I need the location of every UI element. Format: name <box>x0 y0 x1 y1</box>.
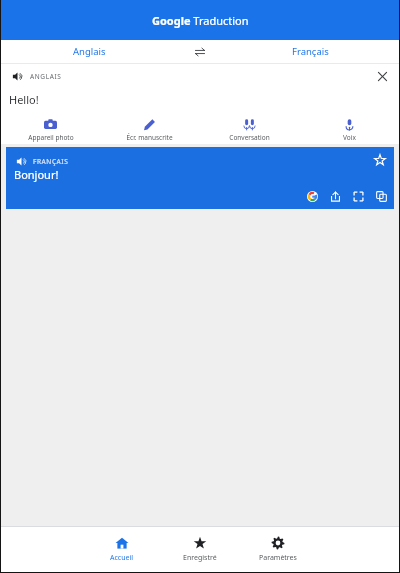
button[interactable]: Anglais <box>1 40 178 63</box>
staticText: FRANÇAIS <box>33 157 69 166</box>
button[interactable]: Appareil photo <box>1 115 100 144</box>
staticText: Voix <box>343 133 356 142</box>
staticText: Accueil <box>110 553 134 563</box>
button[interactable]: Voix <box>299 115 399 144</box>
staticText: Écr. manuscrite <box>126 133 173 142</box>
button[interactable]: Conversation <box>199 115 299 144</box>
staticText: Hello! <box>9 92 39 107</box>
staticText: Anglais <box>73 45 106 58</box>
staticText: ANGLAIS <box>30 72 62 81</box>
button[interactable]: Listen <box>9 68 25 84</box>
staticText: Conversation <box>229 133 270 142</box>
staticText: Appareil photo <box>28 133 74 142</box>
button[interactable]: Listen <box>14 154 28 168</box>
button[interactable]: Swap languages <box>178 40 222 63</box>
button[interactable]: Save translation <box>371 151 389 169</box>
button[interactable]: Search with Google <box>304 188 320 204</box>
staticText: Bonjour! <box>14 167 59 182</box>
staticText: Google Traduction <box>152 13 249 28</box>
button[interactable]: Share <box>327 188 343 204</box>
button[interactable]: Clear text <box>373 67 391 85</box>
button[interactable]: Copy <box>373 188 389 204</box>
button[interactable]: Paramètres <box>239 527 317 572</box>
button[interactable]: Accueil <box>83 527 161 572</box>
staticText: Enregistré <box>183 553 217 563</box>
staticText: Français <box>292 45 329 58</box>
button[interactable]: Français <box>222 40 399 63</box>
button[interactable]: Enregistré <box>161 527 239 572</box>
button[interactable]: Fullscreen <box>350 188 366 204</box>
button[interactable]: Listen <box>6 147 394 209</box>
staticText: Paramètres <box>259 553 297 563</box>
button[interactable]: Écr. manuscrite <box>100 115 199 144</box>
